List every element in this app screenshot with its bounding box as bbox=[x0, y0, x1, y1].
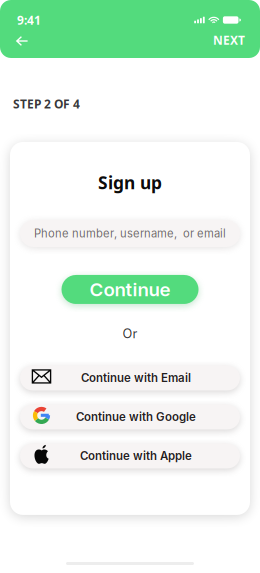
staticText: STEP 2 OF 4 bbox=[13, 96, 80, 112]
button[interactable]: Continue with Apple bbox=[20, 443, 240, 468]
button[interactable]: NEXT bbox=[213, 30, 245, 50]
staticText: Continue with Apple bbox=[80, 449, 192, 463]
button[interactable]: Continue with Google bbox=[20, 404, 240, 429]
staticText: 9:41 bbox=[17, 12, 41, 28]
staticText: Continue bbox=[89, 278, 170, 301]
staticText: Phone number, username, or email bbox=[34, 227, 226, 240]
staticText: Or bbox=[122, 326, 137, 341]
staticText: NEXT bbox=[213, 32, 245, 48]
button[interactable]: Back bbox=[16, 28, 40, 52]
staticText: Continue with Google bbox=[76, 410, 196, 424]
staticText: Sign up bbox=[98, 171, 162, 194]
button[interactable]: Continue bbox=[61, 275, 198, 304]
staticText: Continue with Email bbox=[81, 371, 191, 385]
button[interactable]: Continue with Email bbox=[20, 365, 240, 390]
